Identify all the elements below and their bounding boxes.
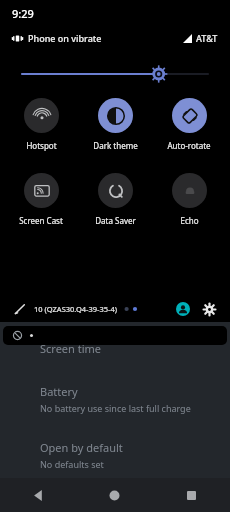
staticText: Hotspot bbox=[26, 140, 57, 151]
button[interactable]: Data Saver bbox=[82, 173, 148, 226]
staticText: Auto-rotate bbox=[167, 140, 211, 151]
staticText: Battery bbox=[40, 384, 78, 399]
staticText: Screen Cast bbox=[19, 215, 63, 226]
button[interactable]: Echo bbox=[156, 173, 222, 226]
staticText: AT&T bbox=[196, 32, 218, 44]
button[interactable]: Back bbox=[0, 478, 76, 512]
staticText: Open by default bbox=[40, 440, 123, 455]
button[interactable] bbox=[3, 326, 227, 345]
button[interactable]: User bbox=[172, 298, 194, 320]
button[interactable]: Dark theme bbox=[82, 98, 148, 151]
staticText: Phone on vibrate bbox=[28, 32, 102, 44]
staticText: 9:29 bbox=[12, 6, 34, 21]
staticText: Dark theme bbox=[93, 140, 138, 151]
button[interactable]: Hotspot bbox=[8, 98, 74, 151]
button[interactable]: Auto-rotate bbox=[156, 98, 222, 151]
staticText: No defaults set bbox=[40, 458, 104, 470]
staticText: 10 (QZAS30.Q4-39-35-4) bbox=[34, 304, 118, 314]
staticText: No battery use since last full charge bbox=[40, 402, 191, 414]
staticText: Screen time bbox=[40, 341, 102, 356]
button[interactable]: Recent apps bbox=[153, 478, 230, 512]
button[interactable]: Settings bbox=[198, 298, 220, 320]
staticText: Echo bbox=[180, 215, 199, 226]
staticText: Data Saver bbox=[95, 215, 136, 226]
button[interactable]: Brightness bbox=[0, 64, 230, 84]
button[interactable]: Home bbox=[76, 478, 153, 512]
button[interactable]: Edit tiles bbox=[10, 299, 30, 319]
button[interactable]: Screen Cast bbox=[8, 173, 74, 226]
